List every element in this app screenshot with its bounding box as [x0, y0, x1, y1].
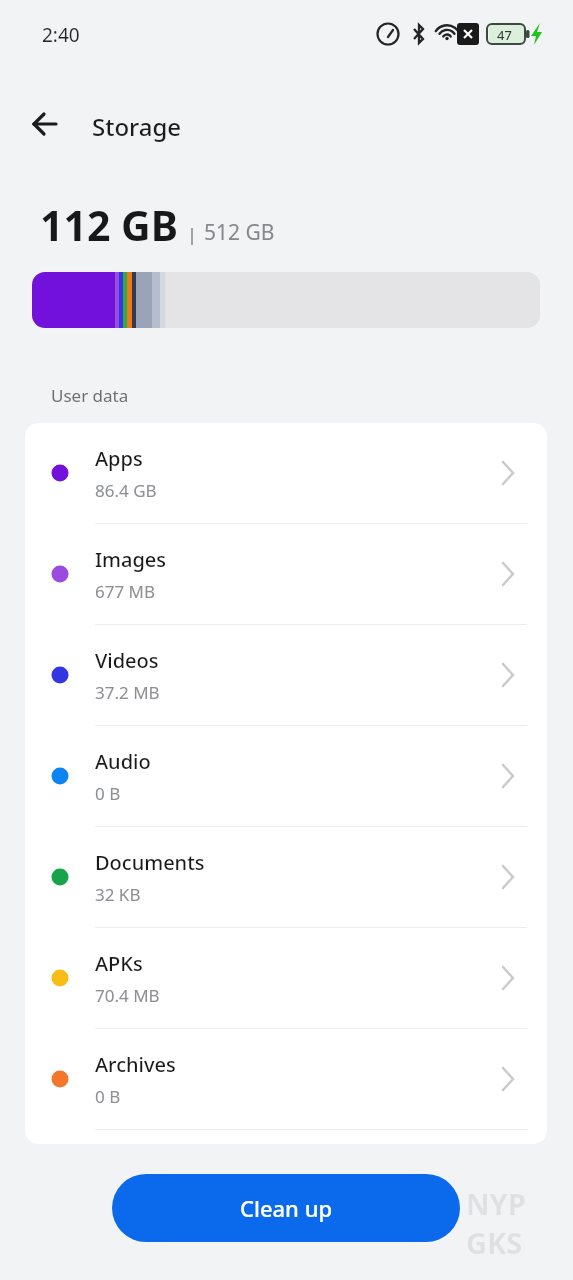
- staticText: Images: [95, 546, 167, 573]
- button[interactable]: APKs: [25, 928, 547, 1028]
- staticText: 512 GB: [204, 218, 275, 247]
- button[interactable]: Videos: [25, 625, 547, 725]
- staticText: 37.2 MB: [95, 681, 160, 704]
- staticText: 47: [497, 26, 512, 44]
- staticText: 0 B: [95, 1085, 121, 1108]
- staticText: Videos: [95, 647, 159, 674]
- button[interactable]: Documents: [25, 827, 547, 927]
- staticText: 32 KB: [95, 883, 141, 906]
- staticText: APKs: [95, 950, 143, 977]
- staticText: 86.4 GB: [95, 479, 157, 502]
- staticText: 2:40: [42, 22, 80, 48]
- staticText: Documents: [95, 849, 205, 876]
- staticText: Archives: [95, 1051, 176, 1078]
- button[interactable]: Apps: [25, 423, 547, 523]
- button[interactable]: Images: [25, 524, 547, 624]
- staticText: NYP: [466, 1184, 526, 1223]
- staticText: GKS: [466, 1223, 523, 1262]
- button[interactable]: Archives: [25, 1029, 547, 1129]
- staticText: 0 B: [95, 782, 121, 805]
- staticText: Apps: [95, 445, 143, 472]
- staticText: Storage: [92, 110, 182, 143]
- staticText: 112 GB: [40, 197, 178, 253]
- staticText: User data: [51, 384, 129, 407]
- staticText: Clean up: [240, 1193, 333, 1223]
- button[interactable]: Back: [21, 100, 69, 148]
- staticText: 677 MB: [95, 580, 156, 603]
- button[interactable]: Audio: [25, 726, 547, 826]
- button[interactable]: Clean up: [112, 1174, 460, 1242]
- staticText: Audio: [95, 748, 151, 775]
- staticText: 70.4 MB: [95, 984, 160, 1007]
